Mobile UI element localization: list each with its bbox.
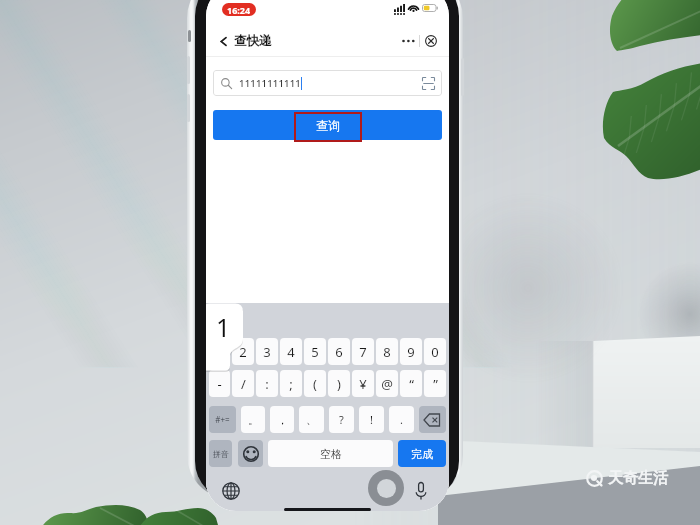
button[interactable]: ? <box>329 406 354 433</box>
button[interactable]: Microphone <box>411 481 431 501</box>
staticText: 查询 <box>316 118 340 133</box>
staticText: ， <box>277 413 288 427</box>
staticText: ( <box>313 375 317 393</box>
button[interactable]: “ <box>400 370 422 397</box>
button[interactable]: ” <box>424 370 446 397</box>
button[interactable]: 、 <box>299 406 324 433</box>
button[interactable]: ) <box>328 370 350 397</box>
staticText: 11111111111 <box>239 77 301 90</box>
staticText: 3 <box>263 343 271 361</box>
staticText: - <box>217 375 222 393</box>
staticText: . <box>400 412 403 427</box>
staticText: 空格 <box>320 447 342 461</box>
button[interactable]: 空格 <box>268 440 393 467</box>
staticText: 、 <box>306 413 317 427</box>
staticText: 6 <box>335 343 343 361</box>
staticText: 4 <box>287 343 295 361</box>
button[interactable]: 3 <box>256 338 278 365</box>
button[interactable]: ， <box>270 406 294 433</box>
button[interactable]: Language <box>221 481 241 501</box>
staticText: / <box>241 375 246 393</box>
staticText: @ <box>381 375 393 393</box>
button[interactable]: 8 <box>376 338 398 365</box>
staticText: 。 <box>248 413 259 427</box>
button[interactable]: 拼音 <box>209 440 232 467</box>
staticText: 5 <box>311 343 319 361</box>
button[interactable]: 4 <box>280 338 302 365</box>
staticText: ? <box>339 412 344 427</box>
staticText: 查快递 <box>234 33 272 49</box>
button[interactable]: @ <box>376 370 398 397</box>
staticText: ! <box>370 412 373 427</box>
staticText: : <box>265 375 269 393</box>
staticText: 8 <box>383 343 391 361</box>
button[interactable]: ; <box>280 370 302 397</box>
button[interactable]: Back <box>213 31 233 51</box>
button[interactable]: Scan barcode <box>422 77 435 90</box>
button[interactable]: 完成 <box>398 440 446 467</box>
button[interactable]: ( <box>304 370 326 397</box>
button[interactable]: 0 <box>424 338 446 365</box>
button[interactable]: 5 <box>304 338 326 365</box>
staticText: 9 <box>407 343 415 361</box>
button[interactable]: ¥ <box>352 370 374 397</box>
staticText: 天奇生活 <box>608 469 668 488</box>
staticText: 7 <box>359 343 367 361</box>
button[interactable]: / <box>232 370 254 397</box>
staticText: 拼音 <box>213 449 229 459</box>
staticText: 2 <box>239 343 247 361</box>
button[interactable]: Close <box>421 31 441 51</box>
button[interactable]: Backspace <box>419 406 446 433</box>
staticText: #+= <box>215 414 230 425</box>
button[interactable]: 7 <box>352 338 374 365</box>
staticText: ” <box>433 375 438 393</box>
button[interactable]: More options <box>398 31 418 51</box>
button[interactable]: Home <box>368 470 404 506</box>
staticText: 16:24 <box>227 4 251 16</box>
button[interactable]: 9 <box>400 338 422 365</box>
staticText: “ <box>409 375 414 393</box>
button[interactable]: 2 <box>232 338 254 365</box>
button[interactable]: Emoji <box>238 440 263 467</box>
button[interactable]: 11111111111 <box>213 70 442 96</box>
staticText: ¥ <box>359 375 367 393</box>
staticText: ; <box>289 375 293 393</box>
button[interactable]: - <box>209 370 230 397</box>
button[interactable]: : <box>256 370 278 397</box>
button[interactable]: #+= <box>209 406 236 433</box>
staticText: 1 <box>216 310 231 344</box>
button[interactable]: 6 <box>328 338 350 365</box>
button[interactable]: 查询 <box>213 110 442 140</box>
button[interactable]: 。 <box>241 406 265 433</box>
staticText: 完成 <box>411 447 433 461</box>
button[interactable]: . <box>389 406 414 433</box>
staticText: 0 <box>431 343 439 361</box>
staticText: ) <box>337 375 341 393</box>
button[interactable]: ! <box>359 406 384 433</box>
